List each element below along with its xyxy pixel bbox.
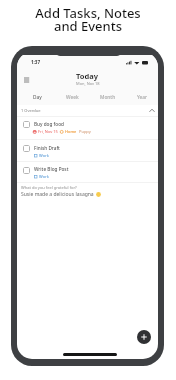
button[interactable]: Finish Draft — [17, 140, 158, 160]
staticText: Add Tasks, Notes and Events — [35, 4, 141, 35]
staticText: Write Blog Post — [34, 166, 69, 172]
staticText: Day — [33, 94, 42, 101]
staticText: Month — [100, 94, 116, 101]
staticText: What do you feel grateful for? — [21, 185, 77, 190]
button[interactable] — [23, 167, 30, 174]
button[interactable]: Write Blog Post — [17, 162, 158, 182]
button[interactable] — [23, 121, 30, 128]
staticText: Work — [39, 174, 49, 179]
button[interactable]: Day — [19, 91, 55, 103]
staticText: Puppy — [79, 129, 91, 134]
staticText: 1 Overdue — [21, 108, 41, 113]
staticText: 1:37 — [31, 59, 40, 65]
staticText: Year — [137, 94, 148, 101]
button[interactable] — [23, 145, 30, 152]
button[interactable]: Buy dog food — [17, 117, 158, 138]
staticText: Week — [66, 94, 79, 101]
staticText: Susie made a delicious lasagna — [21, 191, 94, 198]
staticText: Buy dog food — [34, 121, 64, 127]
staticText: Today — [76, 71, 99, 81]
button[interactable]: What do you feel grateful for? — [17, 182, 158, 204]
button[interactable]: Year — [125, 91, 158, 103]
button[interactable]: Week — [55, 91, 90, 103]
staticText: Finish Draft — [34, 145, 60, 151]
staticText: Fri, Nov 15 — [38, 129, 58, 134]
staticText: Work — [39, 153, 49, 158]
button[interactable]: Month — [90, 91, 125, 103]
button[interactable] — [22, 76, 32, 85]
button[interactable] — [137, 330, 151, 344]
staticText: Home — [65, 129, 77, 134]
staticText: Mon, Nov 18 — [76, 81, 100, 86]
